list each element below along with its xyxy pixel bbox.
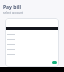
button[interactable]: Continue <box>52 61 57 64</box>
staticText: Pay bill <box>3 4 61 11</box>
button[interactable] <box>5 47 59 52</box>
button[interactable] <box>5 32 59 37</box>
staticText: select account <box>3 11 61 15</box>
button[interactable] <box>5 42 59 47</box>
button[interactable] <box>5 37 59 42</box>
button[interactable] <box>5 52 59 57</box>
